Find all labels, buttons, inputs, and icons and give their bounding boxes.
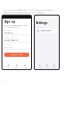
button[interactable]: Profile	[21, 64, 29, 69]
staticText: Sign up	[4, 20, 15, 23]
staticText: Settings	[36, 21, 47, 25]
staticText: The screenshots below illustrate the acc…	[3, 9, 53, 11]
staticText: Alex Morgan	[4, 32, 13, 34]
staticText: Create account	[10, 54, 23, 56]
staticText: that the member sees immediately after t…	[3, 12, 44, 14]
staticText: Profile	[51, 67, 56, 68]
button[interactable]: Search	[43, 64, 50, 69]
staticText: Search	[44, 67, 50, 68]
staticText: alex@example.com	[4, 39, 17, 41]
staticText: Home	[38, 67, 42, 68]
button[interactable]: Profile	[50, 64, 57, 69]
staticText: Name and email	[40, 30, 50, 32]
button[interactable]: Search	[13, 64, 21, 69]
button[interactable]: Home	[4, 64, 13, 69]
staticText: Full name	[4, 30, 10, 31]
staticText: ACCOUNT	[36, 26, 43, 28]
button[interactable]: Home	[36, 64, 43, 69]
staticText: Home	[6, 67, 10, 68]
staticText: ••••••••	[4, 46, 12, 48]
staticText: Enter your details below to create an ac…	[4, 24, 28, 28]
staticText: >	[55, 30, 56, 32]
staticText: Email address	[4, 37, 14, 39]
staticText: Password	[4, 44, 12, 46]
staticText: Search	[14, 67, 20, 68]
staticText: Fig. 1	[3, 81, 6, 82]
staticText: Profile	[22, 67, 27, 68]
button[interactable]: Name and email	[36, 29, 57, 33]
button[interactable]: Create account	[4, 53, 29, 57]
